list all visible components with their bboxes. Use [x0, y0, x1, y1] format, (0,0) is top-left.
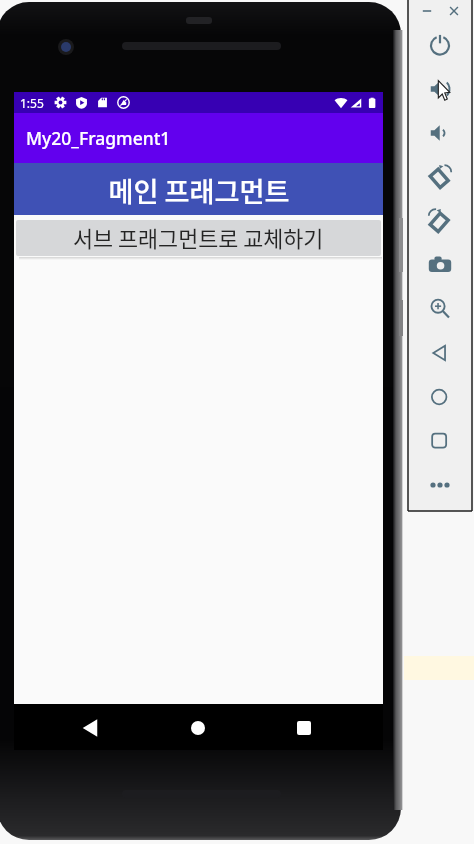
button[interactable]: Close — [447, 4, 461, 18]
button[interactable]: Back — [426, 339, 454, 367]
staticText: 1:55 — [20, 95, 44, 111]
button[interactable]: Minimize — [420, 4, 434, 18]
button[interactable]: Overview — [426, 427, 454, 455]
button[interactable]: Zoom — [426, 295, 454, 323]
button[interactable]: Volume down — [426, 119, 454, 147]
staticText: 메인 프래그먼트 — [108, 170, 290, 209]
button[interactable]: More — [426, 471, 454, 499]
staticText: My20_Fragment1 — [26, 126, 171, 150]
staticText: 서브 프래그먼트로 교체하기 — [73, 222, 324, 254]
button[interactable]: Power — [426, 31, 454, 59]
button[interactable]: Recents — [290, 714, 318, 742]
button[interactable]: Home — [184, 714, 212, 742]
button[interactable]: Rotate right — [426, 207, 454, 235]
button[interactable]: Screenshot — [426, 251, 454, 279]
button[interactable]: Back — [76, 714, 104, 742]
button[interactable]: Home — [426, 383, 454, 411]
button[interactable]: Volume up — [426, 75, 454, 103]
button[interactable]: Rotate left — [426, 163, 454, 191]
button[interactable]: 서브 프래그먼트로 교체하기 — [16, 220, 381, 256]
